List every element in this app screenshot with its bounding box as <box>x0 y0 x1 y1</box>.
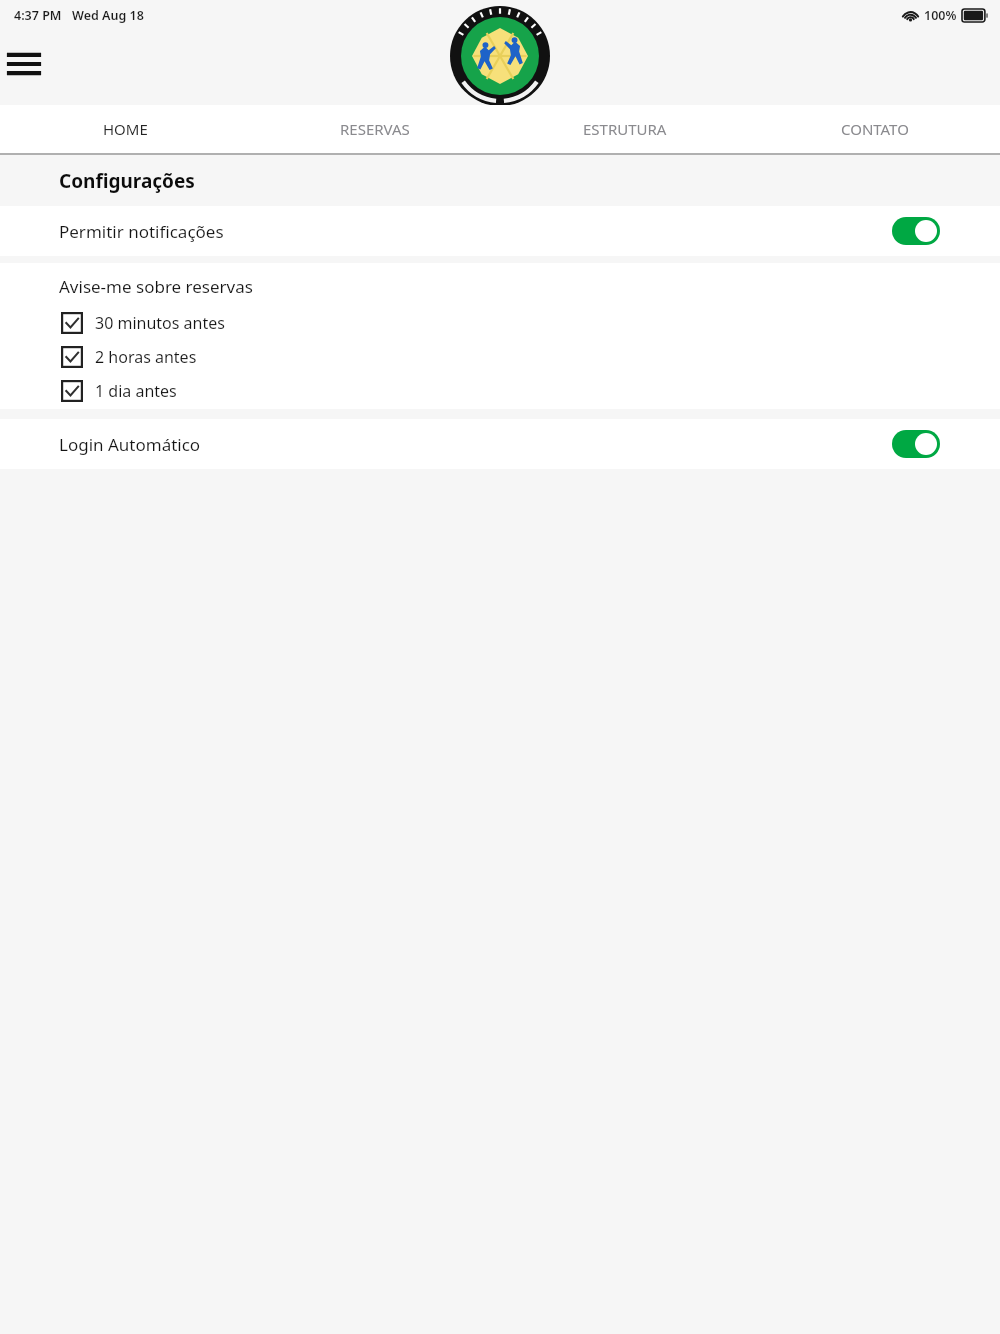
staticText: 4:37 PM <box>14 7 62 24</box>
staticText: 1 dia antes <box>95 380 177 402</box>
staticText: Login Automático <box>59 433 201 456</box>
staticText: Avise-me sobre reservas <box>59 275 253 298</box>
button[interactable]: 1 dia antes <box>0 374 1000 408</box>
staticText: 30 minutos antes <box>95 312 225 334</box>
button[interactable]: HOME <box>0 105 250 153</box>
staticText: RESERVAS <box>340 119 410 139</box>
button[interactable]: 30 minutos antes <box>0 306 1000 340</box>
button[interactable]: ESTRUTURA <box>500 105 750 153</box>
button[interactable]: Arena Brazuca logo <box>450 6 550 106</box>
button[interactable]: Permitir notificações <box>0 206 1000 256</box>
staticText: Wed Aug 18 <box>72 7 144 24</box>
staticText: ESTRUTURA <box>583 119 667 139</box>
staticText: CONTATO <box>841 119 909 139</box>
button[interactable]: RESERVAS <box>250 105 500 153</box>
button[interactable]: Login Automático <box>0 419 1000 469</box>
button[interactable]: CONTATO <box>750 105 1000 153</box>
staticText: Permitir notificações <box>59 220 224 243</box>
button[interactable]: Toggle on <box>892 430 940 458</box>
staticText: 100% <box>924 7 957 24</box>
staticText: 2 horas antes <box>95 346 197 368</box>
button[interactable]: Toggle on <box>892 217 940 245</box>
staticText: Configurações <box>59 168 195 194</box>
button[interactable]: Open menu <box>4 44 44 84</box>
staticText: HOME <box>103 119 148 139</box>
button[interactable]: 2 horas antes <box>0 340 1000 374</box>
